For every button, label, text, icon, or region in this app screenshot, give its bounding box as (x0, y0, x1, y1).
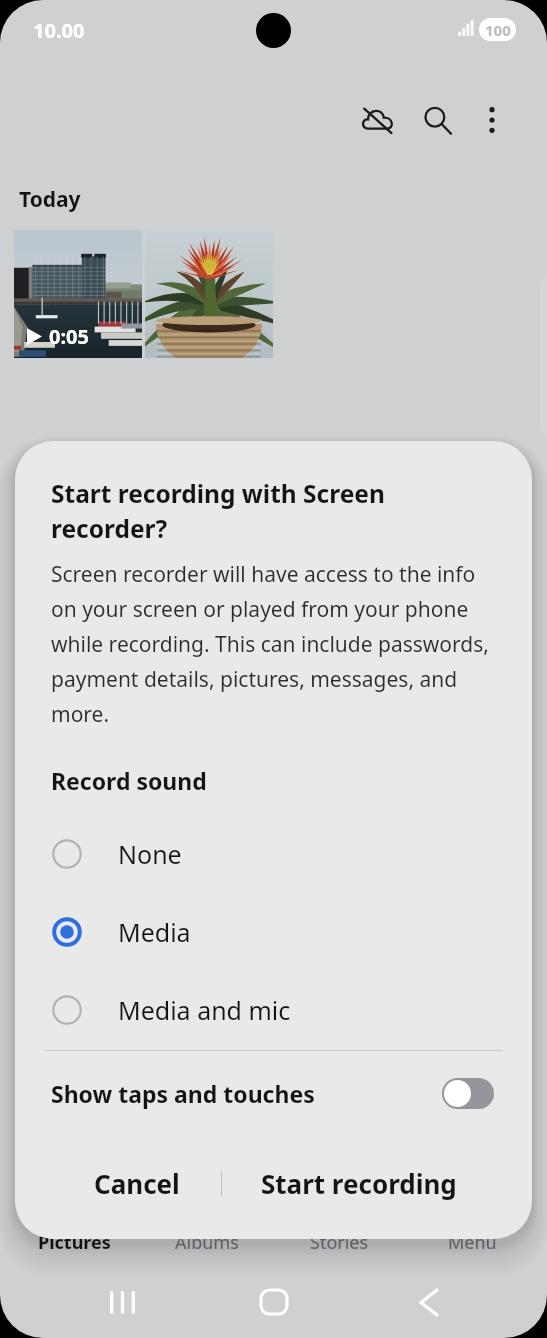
button[interactable]: More options (466, 94, 518, 146)
button[interactable]: Media and mic (15, 971, 532, 1049)
staticText: Pictures (38, 1230, 111, 1255)
staticText: Screen recorder will have access to the … (51, 560, 496, 728)
button[interactable]: Stories (273, 1213, 406, 1271)
staticText: Start recording (261, 1166, 457, 1201)
staticText: Cancel (94, 1166, 180, 1201)
button[interactable]: None (15, 815, 532, 893)
button[interactable]: Start recording (222, 1141, 532, 1225)
staticText: None (118, 837, 182, 871)
button[interactable]: Media (15, 893, 532, 971)
button[interactable]: Recent apps (92, 1272, 152, 1332)
staticText: Media (118, 915, 191, 949)
button[interactable]: Home (244, 1272, 304, 1332)
staticText: Menu (448, 1230, 497, 1255)
staticText: Show taps and touches (51, 1078, 315, 1109)
staticText: Record sound (51, 765, 207, 796)
staticText: 0:05 (49, 323, 89, 350)
staticText: Media and mic (118, 993, 291, 1027)
staticText: 100 (485, 20, 511, 40)
button[interactable]: Cloud sync off (351, 94, 403, 146)
staticText: Albums (175, 1230, 239, 1255)
button[interactable]: Search (411, 94, 463, 146)
staticText: Stories (310, 1230, 369, 1255)
staticText: Start recording with Screen recorder? (51, 477, 399, 546)
button[interactable]: Show taps and touches (15, 1054, 532, 1133)
button[interactable]: Back (398, 1272, 458, 1332)
button[interactable]: Video, 5 seconds (14, 230, 142, 358)
button[interactable]: Pictures (8, 1213, 140, 1271)
staticText: Today (19, 185, 81, 214)
button[interactable]: Menu (406, 1213, 539, 1271)
staticText: 10.00 (33, 17, 85, 44)
button[interactable]: Cancel (15, 1141, 221, 1225)
button[interactable]: Albums (140, 1213, 273, 1271)
button[interactable]: Photo of a flower (145, 230, 273, 358)
